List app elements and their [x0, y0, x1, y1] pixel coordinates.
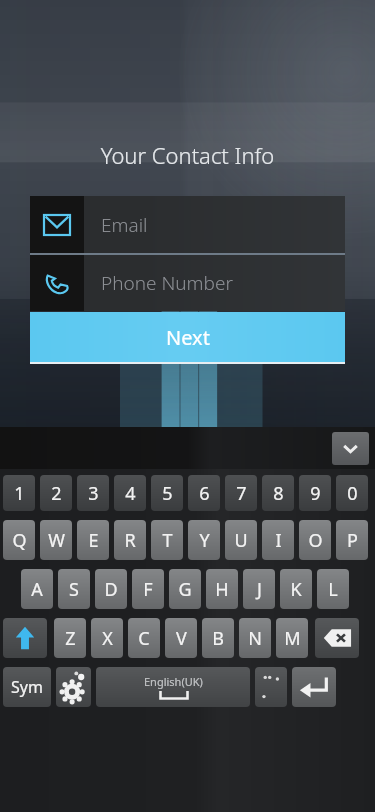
staticText: F [143, 577, 153, 602]
button[interactable]: Shift [3, 618, 47, 658]
button[interactable]: L [317, 569, 349, 609]
button[interactable]: P [336, 520, 368, 560]
staticText: Your Contact Info [0, 140, 375, 170]
button[interactable]: Sym [3, 667, 51, 707]
button[interactable]: S [58, 569, 90, 609]
button[interactable]: 5 [151, 475, 183, 511]
staticText: Y [199, 528, 210, 553]
button[interactable]: Punctuation [255, 667, 287, 707]
staticText: 6 [199, 481, 210, 506]
staticText: Sym [11, 676, 43, 698]
button[interactable]: 2 [40, 475, 72, 511]
staticText: Email [101, 212, 148, 238]
staticText: 3 [88, 481, 99, 506]
button[interactable]: Email [30, 196, 345, 253]
button[interactable]: Z [54, 618, 86, 658]
button[interactable]: 0 [336, 475, 368, 511]
button[interactable]: R [114, 520, 146, 560]
button[interactable]: K [280, 569, 312, 609]
staticText: 2 [51, 481, 62, 506]
button[interactable]: W [40, 520, 72, 560]
button[interactable]: M [276, 618, 308, 658]
button[interactable]: Enter [292, 667, 336, 707]
button[interactable]: 4 [114, 475, 146, 511]
button[interactable]: G [169, 569, 201, 609]
staticText: L [328, 577, 338, 602]
button[interactable]: C [128, 618, 160, 658]
staticText: B [212, 626, 224, 651]
staticText: G [178, 577, 192, 602]
button[interactable]: Y [188, 520, 220, 560]
staticText: K [290, 577, 302, 602]
staticText: M [284, 626, 301, 651]
staticText: U [234, 528, 248, 553]
button[interactable]: 1 [3, 475, 35, 511]
staticText: I [275, 528, 282, 553]
staticText: R [124, 528, 136, 553]
staticText: Q [12, 528, 27, 553]
staticText: V [176, 626, 187, 651]
button[interactable]: English(UK) [96, 667, 250, 707]
button[interactable]: Hide keyboard [332, 432, 369, 465]
button[interactable]: B [202, 618, 234, 658]
staticText: E [88, 528, 99, 553]
button[interactable]: 6 [188, 475, 220, 511]
staticText: T [162, 528, 173, 553]
staticText: 8 [273, 481, 284, 506]
staticText: 0 [347, 481, 358, 506]
button[interactable]: N [239, 618, 271, 658]
staticText: Next [166, 324, 210, 351]
staticText: 4 [125, 481, 136, 506]
staticText: 7 [236, 481, 247, 506]
button[interactable]: O [299, 520, 331, 560]
button[interactable]: 3 [77, 475, 109, 511]
button[interactable]: I [262, 520, 294, 560]
staticText: W [48, 528, 65, 553]
staticText: 5 [162, 481, 173, 506]
button[interactable]: 8 [262, 475, 294, 511]
staticText: D [104, 577, 118, 602]
staticText: O [308, 528, 323, 553]
staticText: X [102, 626, 113, 651]
button[interactable]: U [225, 520, 257, 560]
staticText: English(UK) [144, 674, 203, 689]
button[interactable]: D [95, 569, 127, 609]
button[interactable]: Next [30, 312, 345, 364]
staticText: S [69, 577, 79, 602]
button[interactable]: X [91, 618, 123, 658]
button[interactable]: Keyboard settings [56, 667, 91, 707]
button[interactable]: F [132, 569, 164, 609]
button[interactable]: T [151, 520, 183, 560]
staticText: C [138, 626, 150, 651]
button[interactable]: V [165, 618, 197, 658]
button[interactable]: Phone Number [30, 255, 345, 311]
staticText: Phone Number [101, 270, 233, 296]
button[interactable]: 7 [225, 475, 257, 511]
staticText: P [347, 528, 358, 553]
staticText: J [257, 577, 262, 602]
button[interactable]: E [77, 520, 109, 560]
button[interactable]: H [206, 569, 238, 609]
staticText: N [248, 626, 262, 651]
button[interactable]: A [21, 569, 53, 609]
staticText: A [31, 577, 43, 602]
button[interactable]: Q [3, 520, 35, 560]
staticText: 1 [14, 481, 25, 506]
staticText: H [215, 577, 229, 602]
button[interactable]: 9 [299, 475, 331, 511]
button[interactable]: Backspace [315, 618, 359, 658]
button[interactable]: J [243, 569, 275, 609]
staticText: 9 [310, 481, 321, 506]
staticText: Z [65, 626, 76, 651]
